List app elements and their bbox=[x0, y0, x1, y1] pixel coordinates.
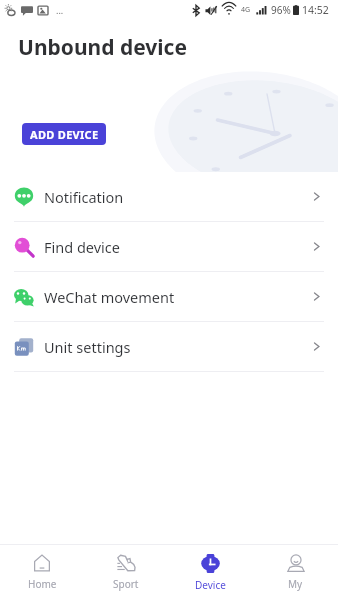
button[interactable]: Home bbox=[0, 545, 84, 600]
staticText: Home bbox=[28, 577, 57, 591]
staticText: 14:52 bbox=[302, 3, 329, 17]
staticText: ... bbox=[56, 4, 64, 16]
button[interactable]: Sport bbox=[84, 545, 168, 600]
button[interactable]: My bbox=[253, 545, 338, 600]
staticText: Unit settings bbox=[44, 337, 131, 357]
staticText: ADD DEVICE bbox=[30, 127, 99, 142]
staticText: Notification bbox=[44, 187, 124, 207]
staticText: My bbox=[288, 577, 303, 591]
staticText: WeChat movement bbox=[44, 287, 175, 307]
staticText: 4G bbox=[241, 5, 251, 15]
button[interactable]: ADD DEVICE bbox=[22, 123, 106, 145]
staticText: Unbound device bbox=[18, 33, 187, 62]
staticText: Sport bbox=[113, 577, 139, 591]
button[interactable]: WeChat movement bbox=[0, 272, 338, 322]
button[interactable]: Device bbox=[168, 545, 253, 600]
button[interactable]: Unit settings bbox=[0, 322, 338, 372]
staticText: Device bbox=[195, 578, 226, 592]
button[interactable]: Notification bbox=[0, 172, 338, 222]
staticText: 96% bbox=[271, 3, 291, 17]
staticText: Find device bbox=[44, 237, 120, 257]
button[interactable]: Find device bbox=[0, 222, 338, 272]
